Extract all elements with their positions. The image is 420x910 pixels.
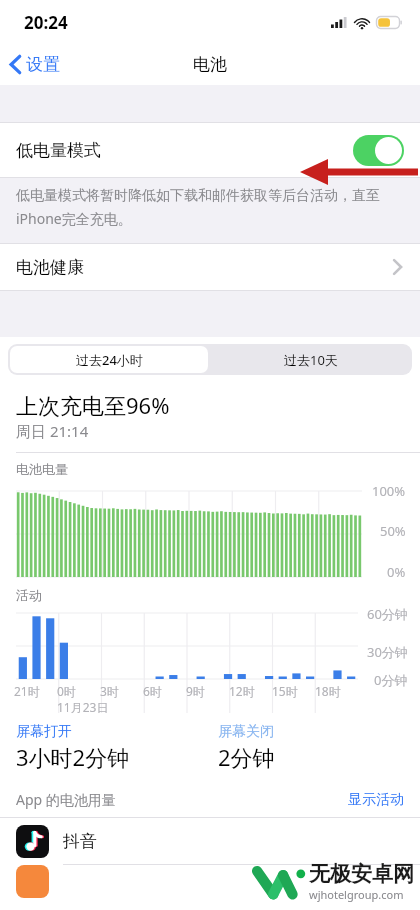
staticText: 设置 xyxy=(26,54,60,75)
staticText: 11月23日 xyxy=(57,699,109,715)
staticText: 过去24小时 xyxy=(76,351,143,369)
staticText: 无极安卓网 xyxy=(309,861,414,887)
staticText: 过去10天 xyxy=(284,351,338,369)
staticText: 屏幕关闭 xyxy=(218,723,274,741)
staticText: 2分钟 xyxy=(218,742,275,772)
staticText: 100% xyxy=(372,482,406,500)
staticText: wjhotelgroup.com xyxy=(309,887,404,902)
staticText: 低电量模式将暂时降低如下载和邮件获取等后台活动，直至 xyxy=(16,187,380,205)
staticText: 18时 xyxy=(315,683,341,699)
staticText: 低电量模式 xyxy=(16,140,101,161)
staticText: 活动 xyxy=(16,587,42,603)
button[interactable] xyxy=(0,865,420,910)
staticText: 50% xyxy=(380,522,406,540)
button[interactable]: 电池健康 xyxy=(0,244,420,290)
staticText: 0分钟 xyxy=(374,671,408,689)
staticText: 0% xyxy=(387,563,406,581)
button[interactable]: 低电量模式 xyxy=(0,123,420,177)
staticText: 12时 xyxy=(229,683,255,699)
button[interactable]: 过去24小时 xyxy=(10,346,208,373)
button[interactable]: 过去10天 xyxy=(210,344,412,375)
staticText: 抖音 xyxy=(63,831,97,852)
staticText: 0时 xyxy=(57,683,76,699)
staticText: 30分钟 xyxy=(367,643,408,661)
staticText: 15时 xyxy=(272,683,298,699)
staticText: 60分钟 xyxy=(367,605,408,623)
staticText: iPhone完全充电。 xyxy=(16,209,132,228)
staticText: 电池 xyxy=(193,54,227,75)
staticText: 上次充电至96% xyxy=(16,390,170,420)
button[interactable]: 显示活动 xyxy=(348,791,404,809)
other: 进入电池健康 xyxy=(393,259,402,275)
staticText: 屏幕打开 xyxy=(16,723,72,741)
staticText: 20:24 xyxy=(24,11,68,34)
staticText: 电池电量 xyxy=(16,461,68,477)
button[interactable]: 设置 xyxy=(0,47,70,82)
staticText: 显示活动 xyxy=(348,791,404,809)
button[interactable]: 屏幕关闭 xyxy=(218,723,420,772)
staticText: 6时 xyxy=(143,683,162,699)
staticText: 电池健康 xyxy=(16,257,84,278)
button[interactable]: 抖音 xyxy=(0,818,420,864)
staticText: 9时 xyxy=(186,683,205,699)
staticText: App 的电池用量 xyxy=(16,790,116,809)
staticText: 3小时2分钟 xyxy=(16,742,130,772)
button[interactable]: 屏幕打开 xyxy=(16,723,218,772)
staticText: 21时 xyxy=(14,683,40,699)
button[interactable]: 低电量模式开关 xyxy=(353,135,404,166)
staticText: 3时 xyxy=(100,683,119,699)
staticText: 周日 21:14 xyxy=(16,421,89,441)
